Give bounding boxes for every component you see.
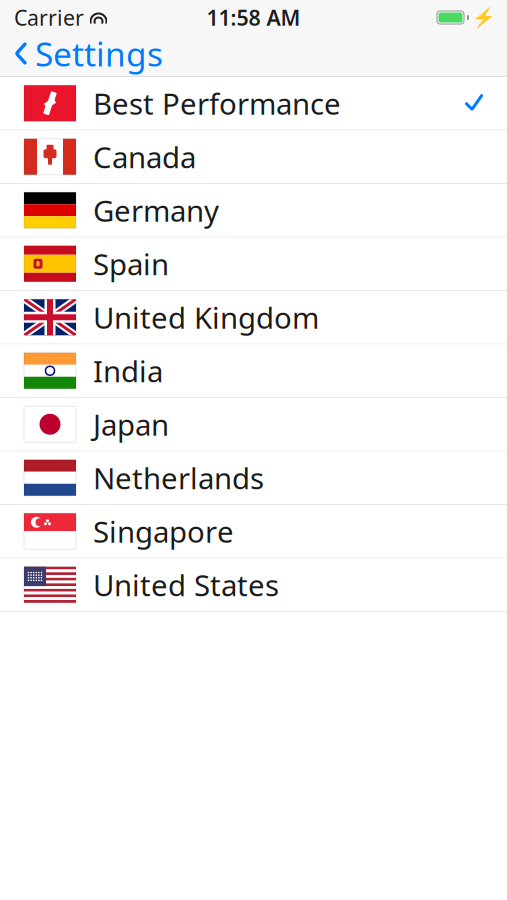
staticText: ⚡ bbox=[472, 7, 495, 28]
staticText: Settings bbox=[35, 31, 163, 76]
staticText: Carrier bbox=[14, 3, 84, 32]
button[interactable]: United Kingdom bbox=[0, 291, 507, 344]
button[interactable]: Japan bbox=[0, 398, 507, 451]
staticText: 11:58 AM bbox=[206, 3, 300, 32]
button[interactable]: Germany bbox=[0, 184, 507, 237]
button[interactable]: Best Performance bbox=[0, 77, 507, 130]
staticText: Germany bbox=[93, 191, 219, 230]
button[interactable]: India bbox=[0, 344, 507, 398]
staticText: Canada bbox=[93, 137, 196, 176]
button[interactable]: Settings bbox=[0, 25, 163, 82]
button[interactable]: United States bbox=[0, 558, 507, 612]
button[interactable]: Netherlands bbox=[0, 451, 507, 505]
staticText: Japan bbox=[93, 405, 169, 444]
staticText: Best Performance bbox=[93, 84, 341, 123]
button[interactable]: Spain bbox=[0, 237, 507, 291]
staticText: Spain bbox=[93, 244, 169, 283]
staticText: India bbox=[93, 351, 163, 390]
button[interactable]: Singapore bbox=[0, 505, 507, 558]
button[interactable]: Canada bbox=[0, 130, 507, 184]
staticText: United Kingdom bbox=[93, 298, 319, 337]
staticText: Singapore bbox=[93, 512, 234, 551]
staticText: Netherlands bbox=[93, 458, 264, 497]
staticText: United States bbox=[93, 565, 279, 604]
